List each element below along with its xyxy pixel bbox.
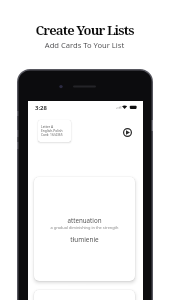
staticText: Create Your Lists [0,21,169,39]
button[interactable]: Letter A [38,120,71,142]
staticText: Card: 16/4365 [41,132,63,136]
staticText: English-Polish [41,128,63,132]
button[interactable]: attenuation [34,177,135,281]
staticText: attenuation [34,216,135,224]
staticText: tłumienie [34,235,135,244]
staticText: Letter A [41,124,54,128]
staticText: a gradual diminishing in the strength [34,225,135,230]
staticText: 3:28 [35,104,47,112]
button[interactable]: Play [123,128,132,137]
staticText: Add Cards To Your List [0,40,169,50]
